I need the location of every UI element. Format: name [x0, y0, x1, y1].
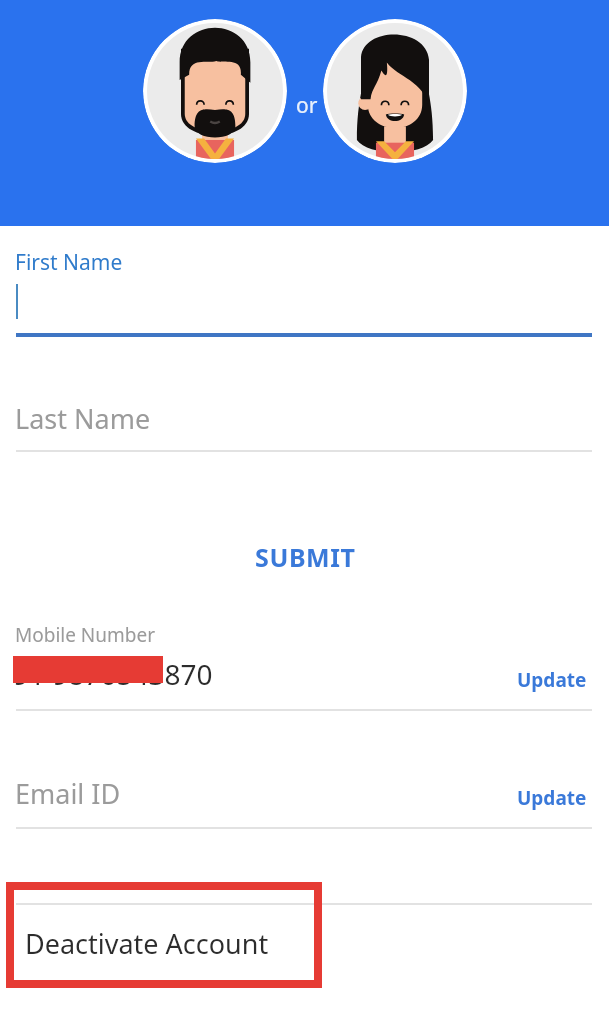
- staticText: Update: [517, 785, 587, 811]
- button[interactable]: SUBMIT: [240, 532, 370, 582]
- staticText: 91 9876543870: [13, 655, 213, 693]
- button[interactable]: Choose male avatar: [143, 19, 287, 163]
- staticText: or: [296, 91, 318, 120]
- button[interactable]: First Name: [0, 240, 609, 340]
- button[interactable]: Email ID: [0, 745, 609, 825]
- button[interactable]: Deactivate Account: [0, 903, 609, 983]
- staticText: Update: [517, 667, 587, 693]
- staticText: Email ID: [15, 775, 121, 812]
- button[interactable]: Update: [503, 658, 601, 702]
- staticText: SUBMIT: [255, 540, 356, 574]
- staticText: First Name: [15, 248, 123, 277]
- staticText: Deactivate Account: [25, 925, 269, 962]
- button[interactable]: Mobile Number: [0, 610, 609, 709]
- staticText: Mobile Number: [15, 622, 156, 648]
- staticText: Last Name: [15, 400, 151, 437]
- button[interactable]: Update: [503, 776, 601, 820]
- button[interactable]: Last Name: [0, 380, 609, 455]
- button[interactable]: Choose female avatar: [323, 19, 467, 163]
